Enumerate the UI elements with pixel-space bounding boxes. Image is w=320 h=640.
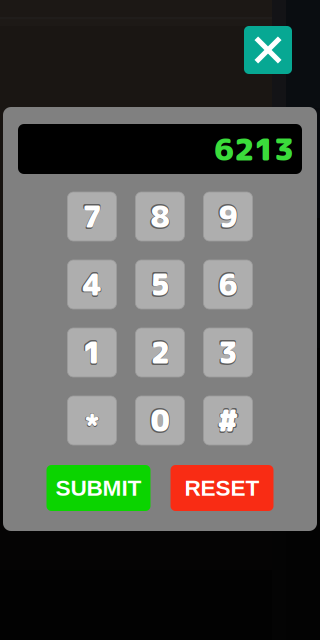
staticText: 7 [81,194,103,239]
staticText: 5 [150,264,169,305]
button[interactable]: * [67,396,116,445]
button[interactable]: 1 [67,328,116,377]
button[interactable]: 6 [203,260,252,309]
button[interactable]: # [203,396,252,445]
staticText: RESET [184,475,259,501]
button[interactable]: 5 [135,260,184,309]
button[interactable]: 9 [203,192,252,241]
staticText: 5 [149,262,171,307]
staticText: 0 [150,400,169,441]
button[interactable]: 3 [203,328,252,377]
staticText: 1 [81,330,103,375]
staticText: 4 [82,264,101,305]
staticText: 2 [150,332,169,373]
staticText: 2 [149,330,171,375]
button[interactable]: 8 [135,192,184,241]
staticText: SUBMIT [55,475,141,501]
staticText: 3 [217,330,239,375]
staticText: 9 [217,194,239,239]
staticText: # [217,400,238,441]
button[interactable]: 7 [67,192,116,241]
staticText: # [216,398,239,443]
button[interactable]: RESET [170,465,273,511]
staticText: 7 [82,196,101,237]
button[interactable]: 0 [135,396,184,445]
staticText: 8 [149,194,171,239]
button[interactable]: 4 [67,260,116,309]
staticText: 6213 [214,128,294,170]
staticText: 0 [149,398,171,443]
button[interactable]: Close [244,26,292,74]
staticText: 3 [218,332,237,373]
staticText: 4 [81,262,103,307]
button[interactable]: SUBMIT [46,465,150,511]
staticText: 8 [150,196,169,237]
staticText: 9 [218,196,237,237]
staticText: 6 [217,262,239,307]
staticText: 6 [218,264,237,305]
staticText: * [83,403,100,448]
button[interactable]: 2 [135,328,184,377]
staticText: * [84,405,99,446]
staticText: 1 [82,332,101,373]
